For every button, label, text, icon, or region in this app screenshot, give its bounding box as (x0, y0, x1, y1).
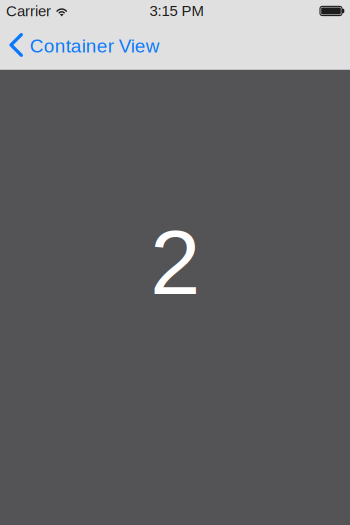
staticText: 2 (150, 212, 200, 313)
staticText: Container View (30, 35, 160, 57)
staticText: Carrier (6, 3, 51, 19)
button[interactable]: Back to Container View (0, 22, 170, 70)
staticText: 3:15 PM (149, 2, 203, 19)
